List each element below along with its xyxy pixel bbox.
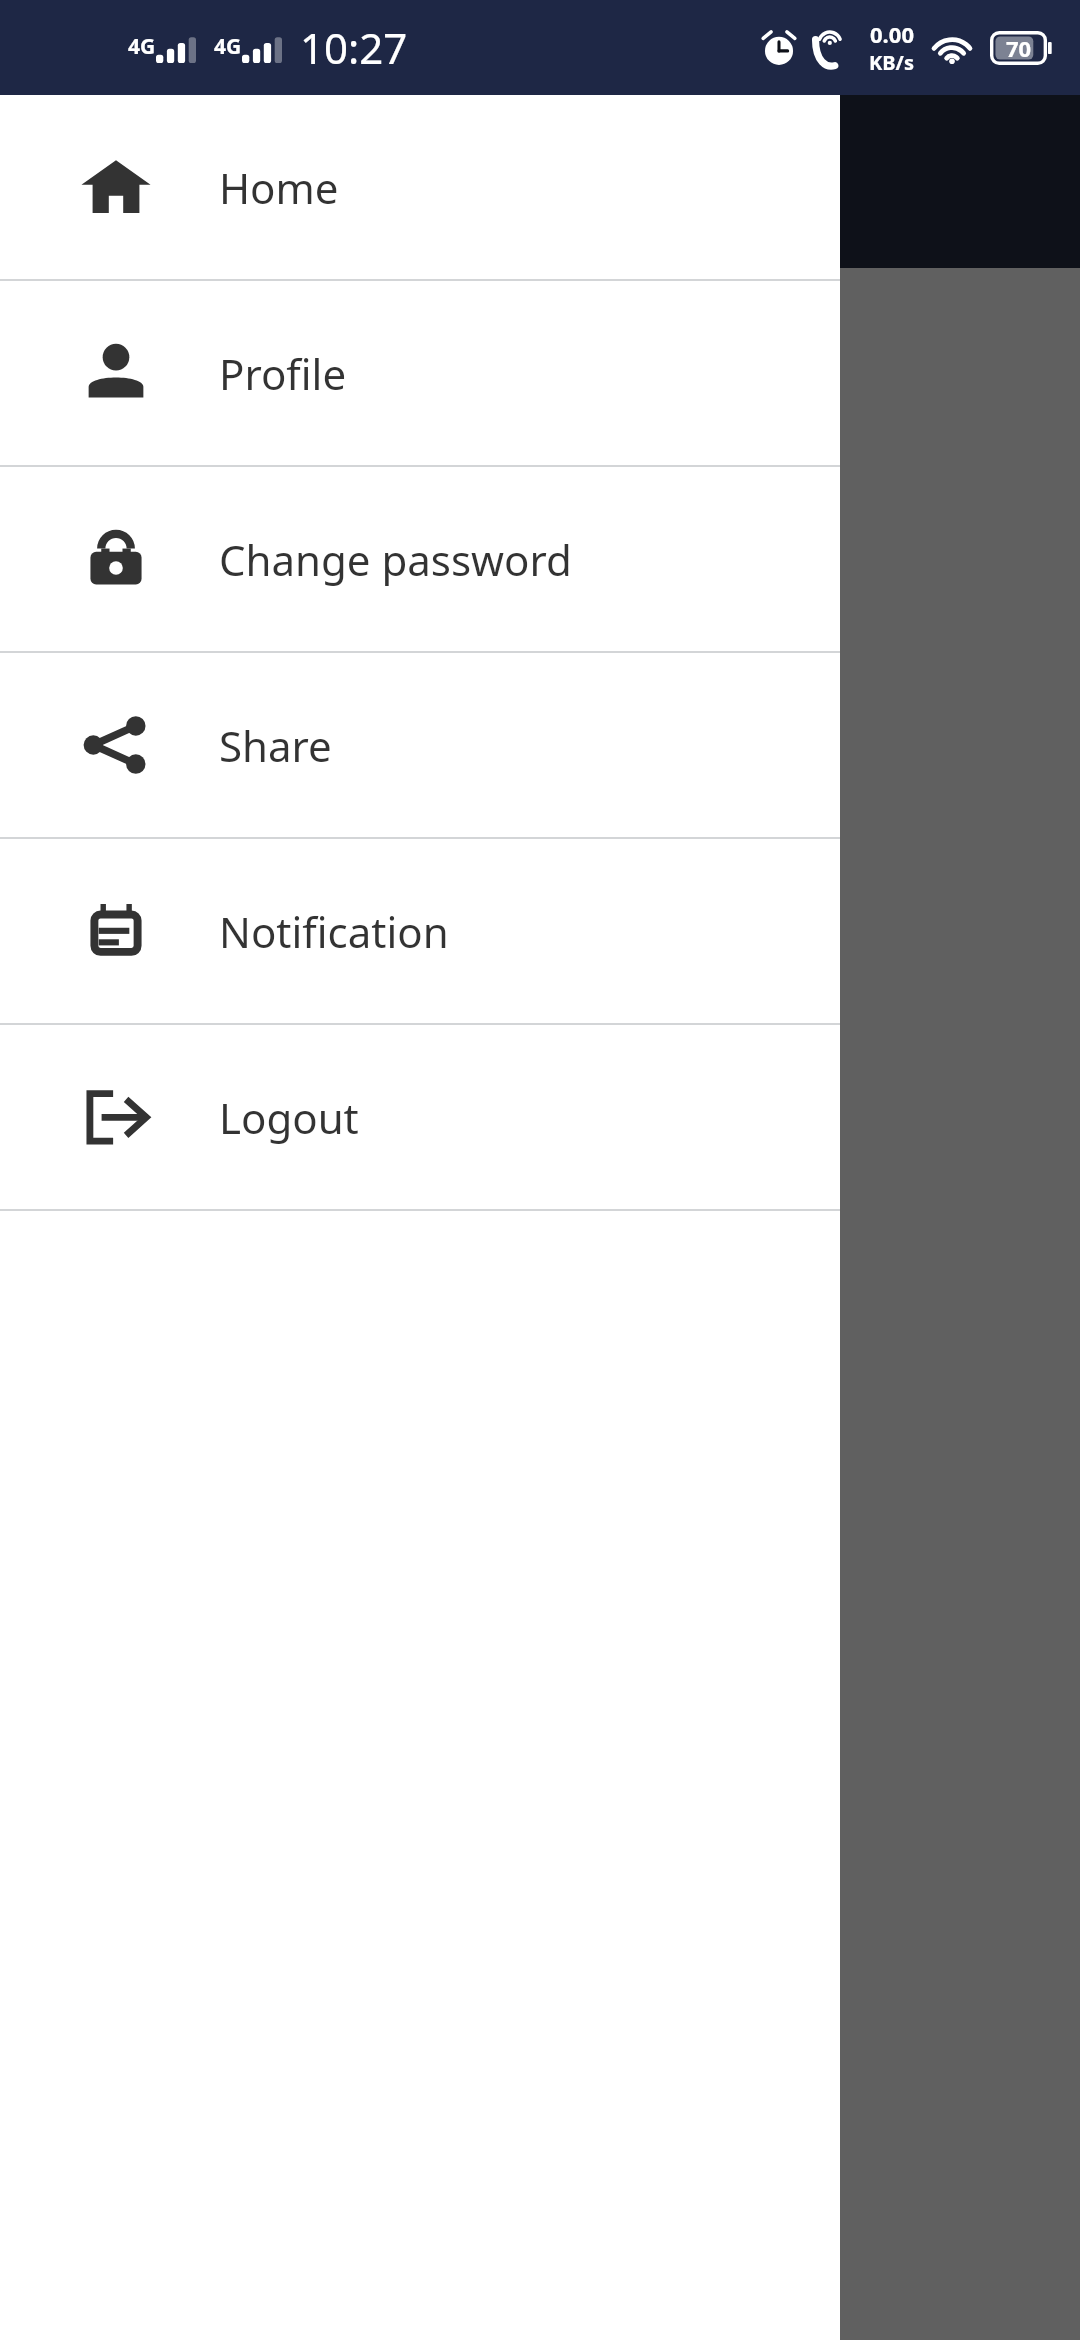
staticText: Profile <box>219 345 347 402</box>
button[interactable]: Share <box>0 653 840 837</box>
staticText: Notification <box>219 903 449 960</box>
button[interactable]: Notification <box>0 839 840 1023</box>
staticText: 4G <box>214 32 242 61</box>
staticText: 70 <box>1006 33 1032 63</box>
staticText: 10:27 <box>300 19 408 76</box>
staticText: 0.00 <box>870 19 914 49</box>
button[interactable]: Logout <box>0 1025 840 1209</box>
button[interactable]: Home <box>0 95 840 279</box>
staticText: 4G <box>128 32 156 61</box>
staticText: Change password <box>219 531 572 588</box>
staticText: KB/s <box>869 49 914 76</box>
button[interactable]: Profile <box>0 281 840 465</box>
staticText: Logout <box>219 1089 359 1146</box>
staticText: Share <box>219 717 332 774</box>
button[interactable]: Change password <box>0 467 840 651</box>
staticText: Home <box>219 159 339 216</box>
